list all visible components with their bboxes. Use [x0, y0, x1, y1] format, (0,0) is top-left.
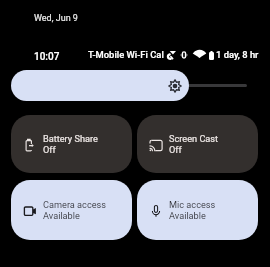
staticText: Available: [169, 210, 206, 221]
staticText: Battery Share: [43, 133, 98, 144]
staticText: T-Mobile Wi-Fi Cal: [88, 49, 164, 60]
button[interactable]: Battery Share: [11, 115, 132, 173]
staticText: Off: [43, 144, 56, 155]
staticText: Screen Cast: [169, 133, 219, 144]
staticText: Camera access: [43, 199, 107, 210]
button[interactable]: Camera access: [11, 180, 132, 240]
button[interactable]: Brightness: [11, 70, 247, 101]
staticText: Available: [43, 210, 80, 221]
staticText: Off: [169, 144, 182, 155]
button[interactable]: Screen Cast: [137, 115, 258, 173]
staticText: 10:07: [34, 51, 60, 63]
button[interactable]: Mic access: [137, 180, 258, 240]
staticText: 1 day, 8 hr: [216, 49, 259, 60]
staticText: Mic access: [169, 199, 216, 210]
staticText: Wed, Jun 9: [34, 13, 78, 24]
